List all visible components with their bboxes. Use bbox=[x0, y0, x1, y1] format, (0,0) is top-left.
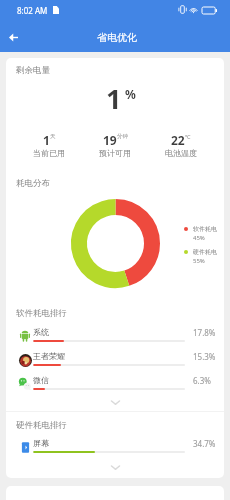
staticText: 剩余电量 bbox=[16, 65, 50, 76]
button[interactable]: 王者荣耀 bbox=[6, 348, 224, 372]
button[interactable]: Back bbox=[2, 26, 24, 48]
staticText: 电池温度 bbox=[165, 148, 197, 158]
staticText: 屏幕 bbox=[33, 438, 49, 448]
staticText: 15.3% bbox=[193, 351, 216, 362]
staticText: 耗电分布 bbox=[16, 178, 50, 189]
staticText: 1 bbox=[106, 80, 122, 117]
staticText: 预计可用 bbox=[99, 148, 131, 158]
button[interactable]: 微信 bbox=[6, 372, 224, 396]
staticText: 6.3% bbox=[193, 375, 211, 386]
staticText: 王者荣耀 bbox=[33, 351, 65, 361]
staticText: 硬件耗电排行 bbox=[16, 420, 67, 431]
staticText: 8:02 AM bbox=[17, 5, 48, 16]
staticText: 系统 bbox=[33, 327, 49, 337]
staticText: 分钟 bbox=[117, 133, 128, 140]
staticText: 45% bbox=[193, 234, 205, 242]
staticText: ℃ bbox=[185, 133, 191, 140]
staticText: 当前已用 bbox=[33, 148, 65, 158]
staticText: 天 bbox=[50, 133, 56, 140]
button[interactable]: 屏幕 bbox=[6, 435, 224, 459]
staticText: % bbox=[125, 86, 136, 102]
staticText: 19 bbox=[103, 132, 117, 148]
staticText: 微信 bbox=[33, 375, 49, 385]
staticText: 17.8% bbox=[193, 327, 216, 338]
staticText: 省电优化 bbox=[97, 31, 137, 44]
staticText: 硬件耗电 bbox=[193, 248, 217, 256]
button[interactable]: 系统 bbox=[6, 324, 224, 348]
staticText: 软件耗电排行 bbox=[16, 308, 67, 319]
staticText: 软件耗电 bbox=[193, 225, 217, 233]
staticText: 55% bbox=[193, 257, 205, 265]
staticText: 22 bbox=[171, 132, 185, 148]
staticText: 1 bbox=[43, 132, 50, 148]
staticText: 34.7% bbox=[193, 438, 216, 449]
